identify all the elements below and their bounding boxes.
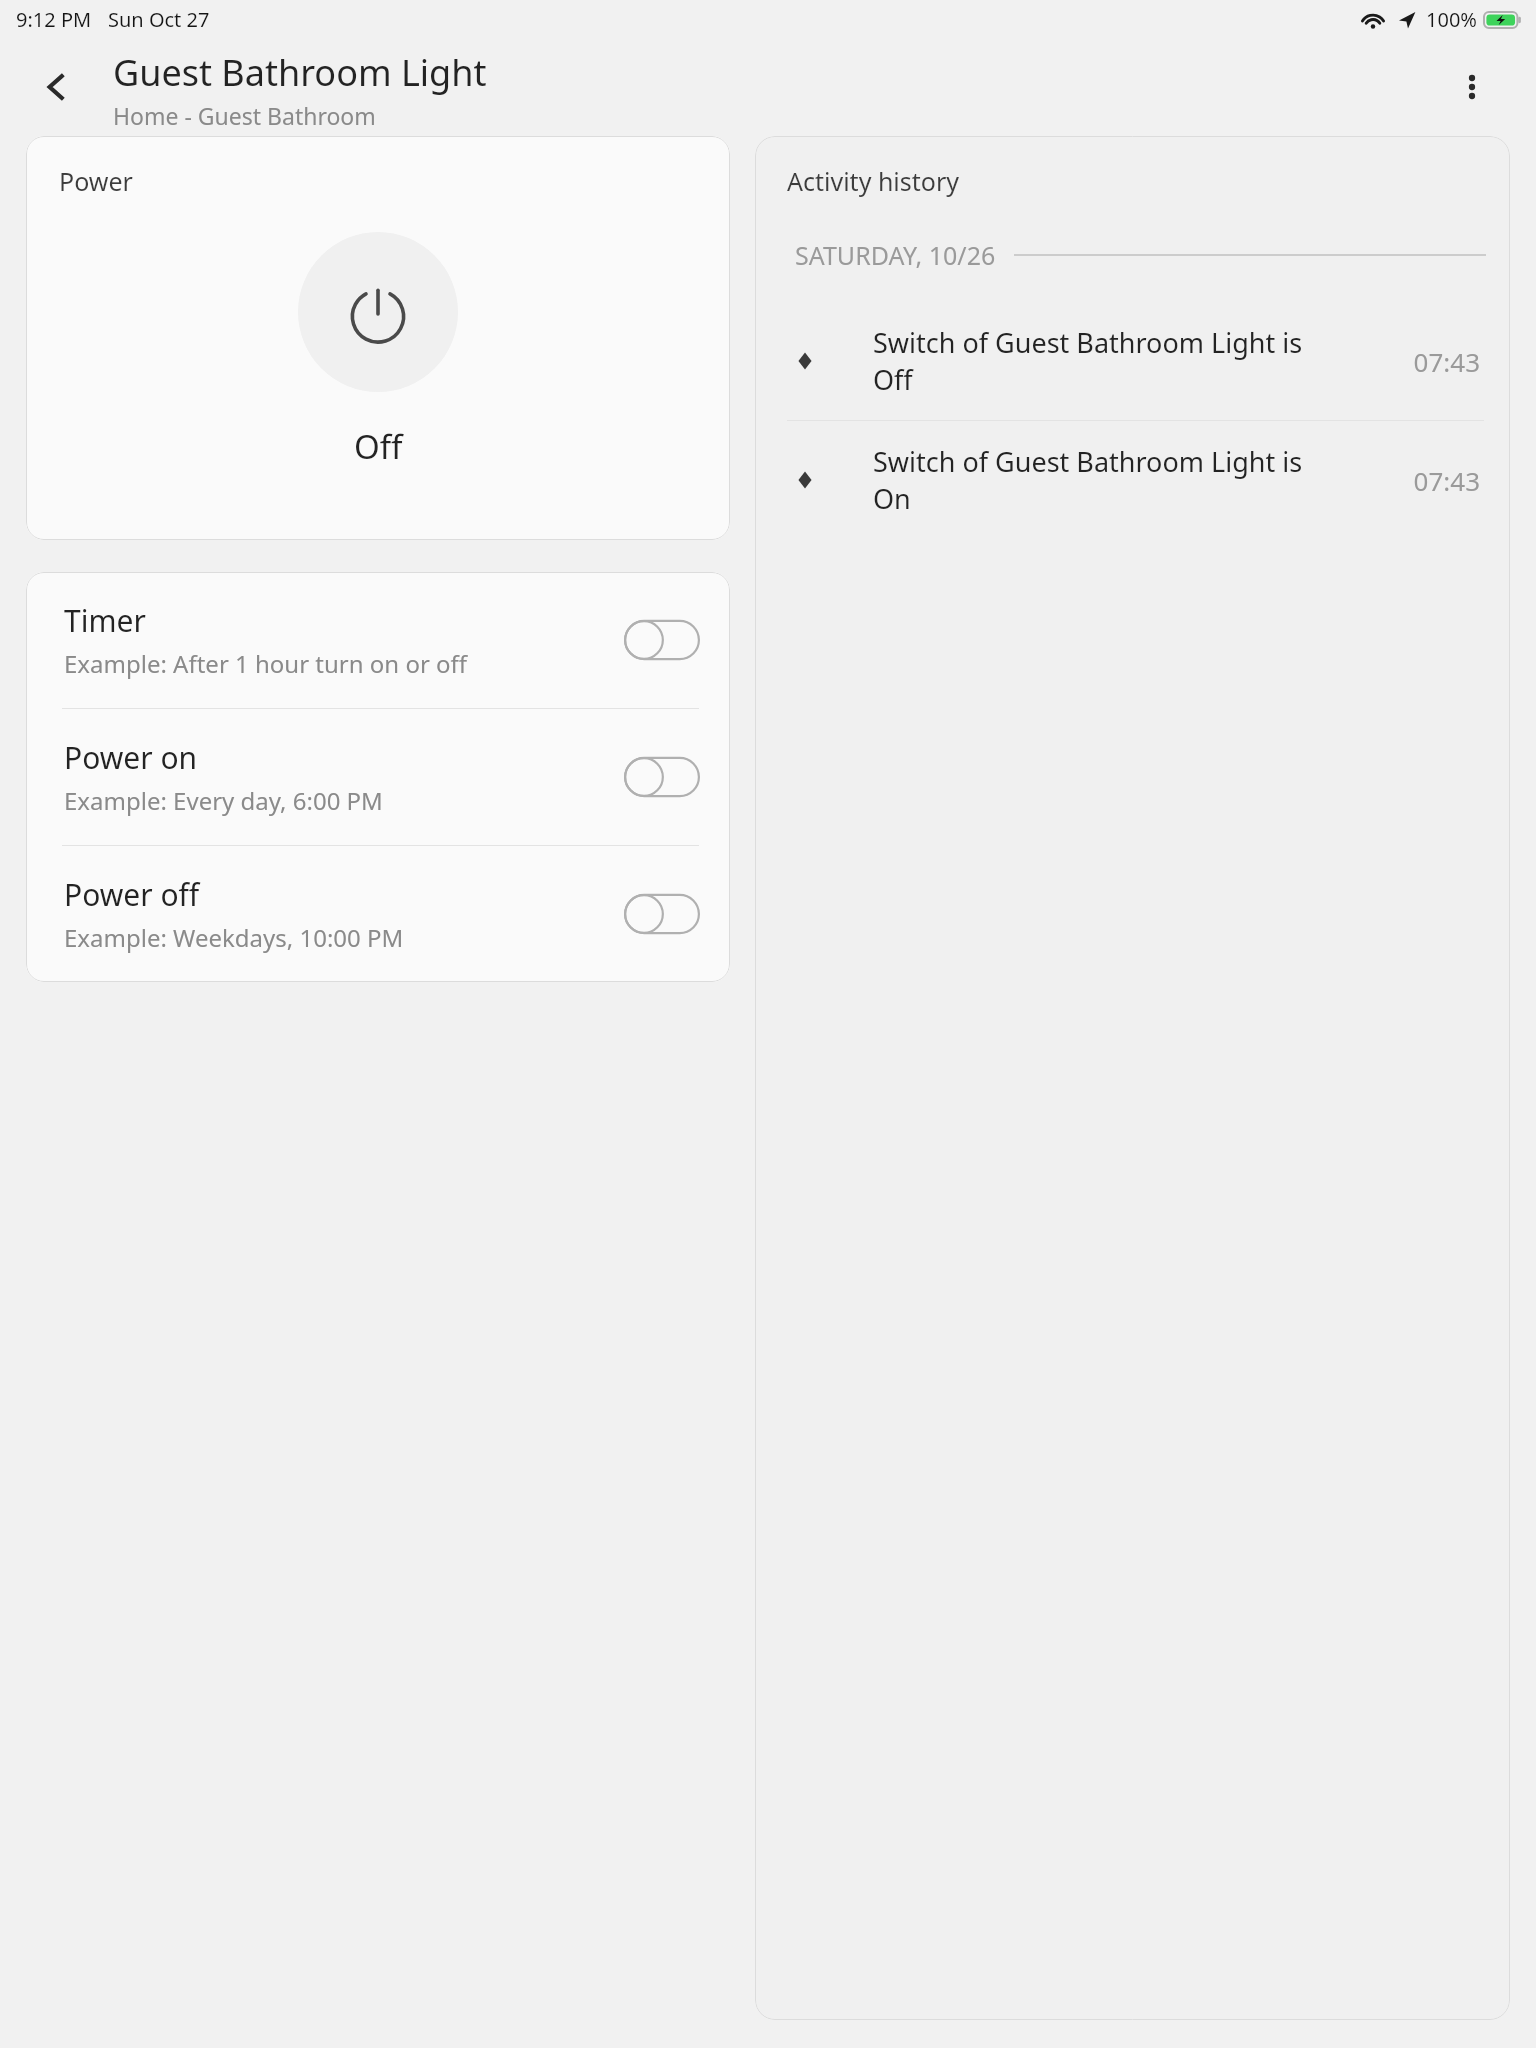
staticText: Activity history xyxy=(787,164,959,198)
button[interactable]: Power on xyxy=(26,709,730,845)
staticText: 100% xyxy=(1426,6,1477,33)
staticText: 07:43 xyxy=(1413,463,1480,498)
staticText: Example: After 1 hour turn on or off xyxy=(64,647,468,680)
staticText: Guest Bathroom Light xyxy=(113,48,487,97)
staticText: Off xyxy=(354,424,403,469)
staticText: Off xyxy=(873,361,913,398)
staticText: Sun Oct 27 xyxy=(108,6,210,33)
staticText: 07:43 xyxy=(1413,344,1480,379)
button[interactable]: Switch of Guest Bathroom Light is xyxy=(755,421,1510,539)
button[interactable]: Toggle power xyxy=(298,232,458,392)
staticText: Switch of Guest Bathroom Light is xyxy=(873,443,1303,480)
staticText: On xyxy=(873,480,911,517)
button[interactable]: Timer xyxy=(26,572,730,708)
staticText: Example: Weekdays, 10:00 PM xyxy=(64,921,404,954)
staticText: Timer xyxy=(64,600,146,641)
button[interactable]: Back xyxy=(24,55,88,119)
staticText: Power on xyxy=(64,737,198,778)
staticText: Power off xyxy=(64,874,200,915)
staticText: Switch of Guest Bathroom Light is xyxy=(873,324,1303,361)
staticText: 9:12 PM xyxy=(16,6,92,33)
staticText: Home - Guest Bathroom xyxy=(113,100,376,131)
staticText: SATURDAY, 10/26 xyxy=(795,238,996,272)
button[interactable]: Toggle xyxy=(624,753,700,801)
button[interactable]: Toggle xyxy=(624,890,700,938)
staticText: Power xyxy=(59,164,133,198)
staticText: Example: Every day, 6:00 PM xyxy=(64,784,383,817)
button[interactable]: More options xyxy=(1440,55,1504,119)
button[interactable]: Power off xyxy=(26,846,730,982)
button[interactable]: Toggle xyxy=(624,616,700,664)
button[interactable]: Switch of Guest Bathroom Light is xyxy=(755,302,1510,420)
